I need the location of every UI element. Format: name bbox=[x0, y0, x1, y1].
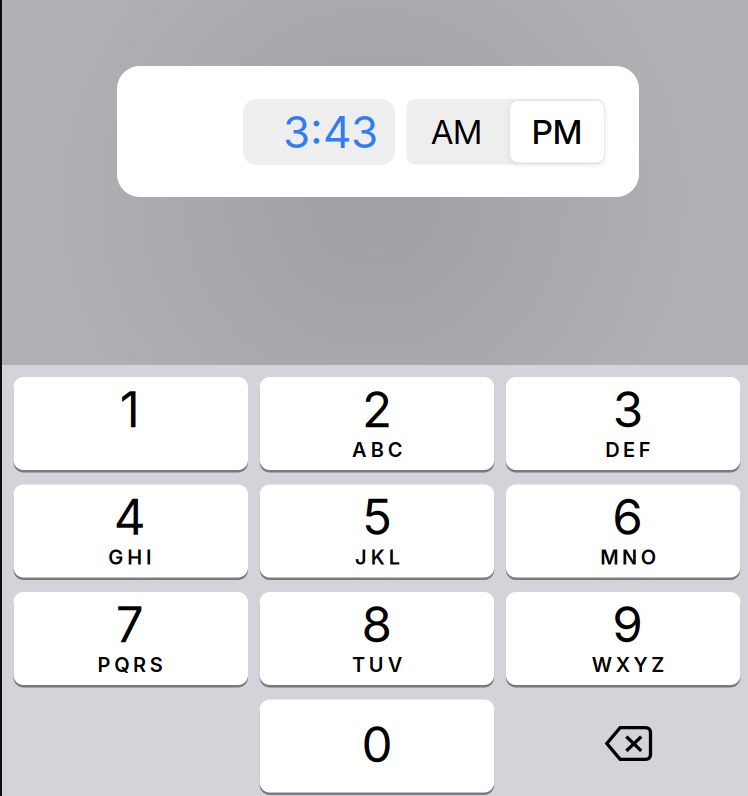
button[interactable]: 0 bbox=[260, 699, 494, 795]
staticText: DEF bbox=[605, 437, 651, 462]
button[interactable]: AM bbox=[406, 99, 510, 164]
staticText: 3 bbox=[613, 379, 643, 439]
staticText: TUV bbox=[352, 652, 403, 677]
button[interactable]: 9 bbox=[506, 592, 740, 688]
button[interactable]: 7 bbox=[13, 592, 248, 688]
staticText: 1 bbox=[120, 379, 140, 439]
staticText: 7 bbox=[116, 594, 144, 654]
staticText: 5 bbox=[362, 487, 392, 547]
button[interactable]: 2 bbox=[260, 377, 494, 473]
staticText: 2 bbox=[362, 379, 392, 439]
staticText: 6 bbox=[612, 487, 643, 547]
button[interactable]: 8 bbox=[260, 592, 494, 688]
button[interactable]: 3 bbox=[506, 377, 740, 473]
button[interactable]: Delete bbox=[511, 697, 746, 790]
staticText: 0 bbox=[361, 714, 392, 774]
staticText: PM bbox=[532, 112, 583, 152]
staticText: AM bbox=[431, 112, 482, 152]
button[interactable]: 1 bbox=[13, 377, 248, 473]
staticText: PQRS bbox=[97, 652, 163, 677]
button[interactable]: 5 bbox=[260, 484, 494, 580]
button[interactable]: 6 bbox=[506, 484, 740, 580]
staticText: MNO bbox=[600, 545, 656, 569]
button[interactable]: 3:43 bbox=[243, 99, 395, 165]
staticText: 3:43 bbox=[283, 105, 378, 159]
staticText: GHI bbox=[108, 545, 152, 569]
staticText: ABC bbox=[352, 437, 403, 462]
staticText: 9 bbox=[612, 594, 643, 654]
staticText: 4 bbox=[114, 487, 146, 547]
button[interactable]: 4 bbox=[13, 484, 248, 580]
button[interactable]: PM bbox=[510, 101, 604, 162]
staticText: JKL bbox=[355, 545, 400, 569]
staticText: 8 bbox=[361, 594, 392, 654]
staticText: WXYZ bbox=[592, 652, 664, 677]
